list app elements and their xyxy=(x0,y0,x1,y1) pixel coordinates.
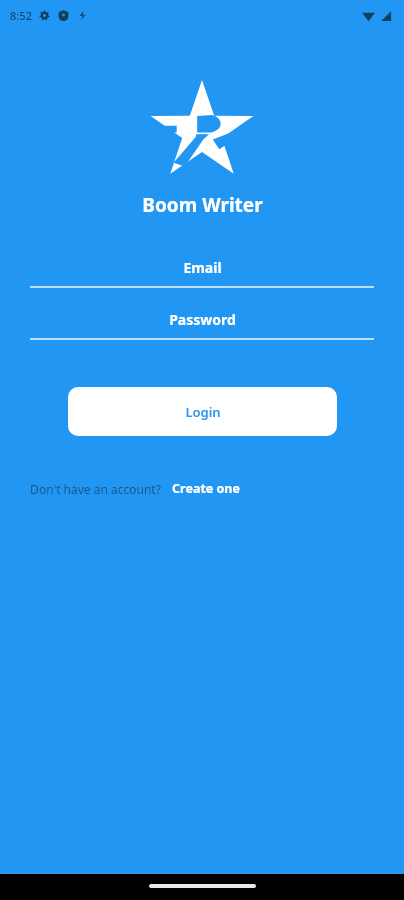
button[interactable]: Create one xyxy=(171,478,241,499)
staticText: Boom Writer xyxy=(142,192,263,218)
staticText: Login xyxy=(185,403,221,421)
button[interactable]: Password xyxy=(30,310,374,329)
staticText: Create one xyxy=(172,480,240,497)
staticText: Password xyxy=(169,310,236,329)
staticText: Email xyxy=(183,258,222,277)
staticText: Don't have an account? xyxy=(30,481,161,497)
button[interactable]: Email xyxy=(30,258,374,277)
button[interactable]: Login xyxy=(68,387,337,436)
staticText: 8:52 xyxy=(10,8,32,23)
